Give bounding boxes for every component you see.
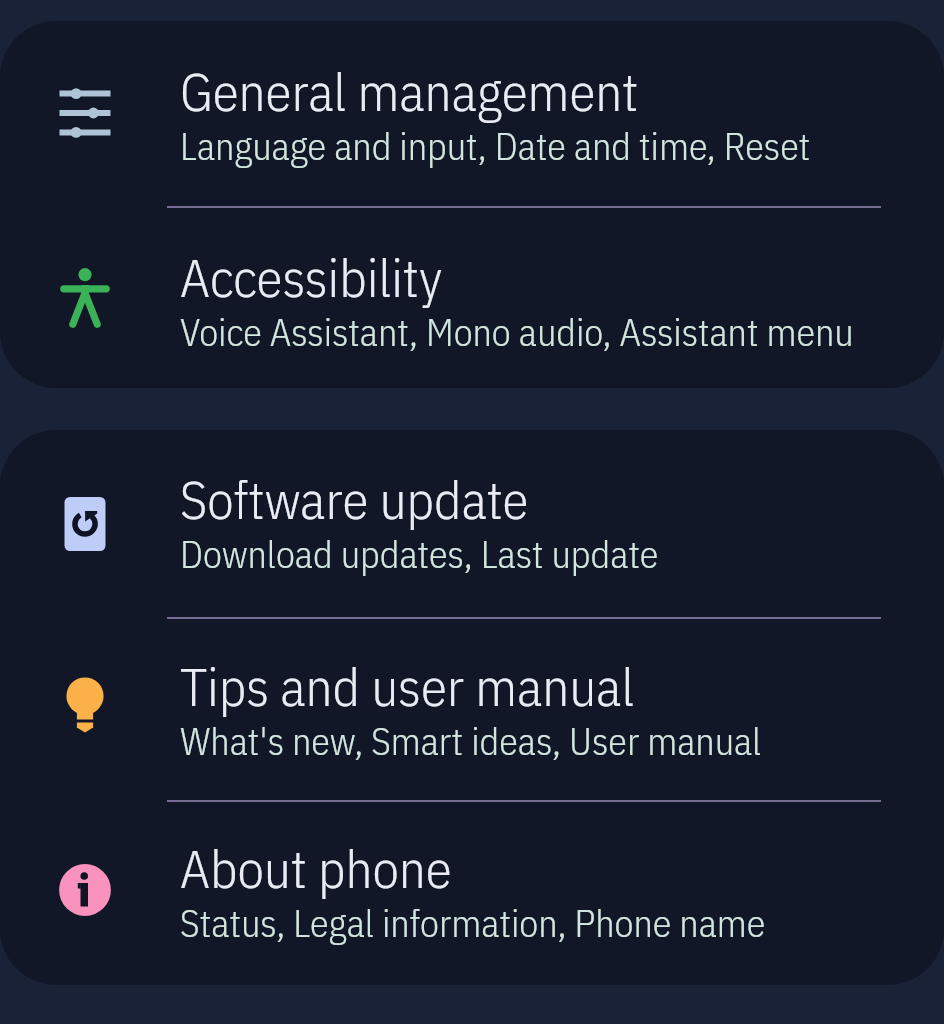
other: About phone [55,858,115,922]
button[interactable]: Tips and user manual [0,617,944,800]
button[interactable]: General management [0,21,944,206]
other: General management [55,81,115,145]
staticText: Download updates, Last update [180,529,659,578]
button[interactable]: Software update [0,430,944,617]
staticText: What's new, Smart ideas, User manual [180,716,762,765]
staticText: Status, Legal information, Phone name [180,898,766,947]
button[interactable]: About phone [0,800,944,985]
other: Software update [55,492,115,556]
staticText: Language and input, Date and time, Reset [180,121,811,170]
staticText: About phone [180,834,452,903]
button[interactable]: Accessibility [0,206,944,388]
staticText: Accessibility [180,243,443,312]
other: Tips and user manual [55,675,115,739]
staticText: Voice Assistant, Mono audio, Assistant m… [180,307,854,356]
staticText: Software update [180,465,529,534]
staticText: Tips and user manual [180,652,635,721]
staticText: General management [180,57,639,126]
other: Accessibility [55,266,115,330]
